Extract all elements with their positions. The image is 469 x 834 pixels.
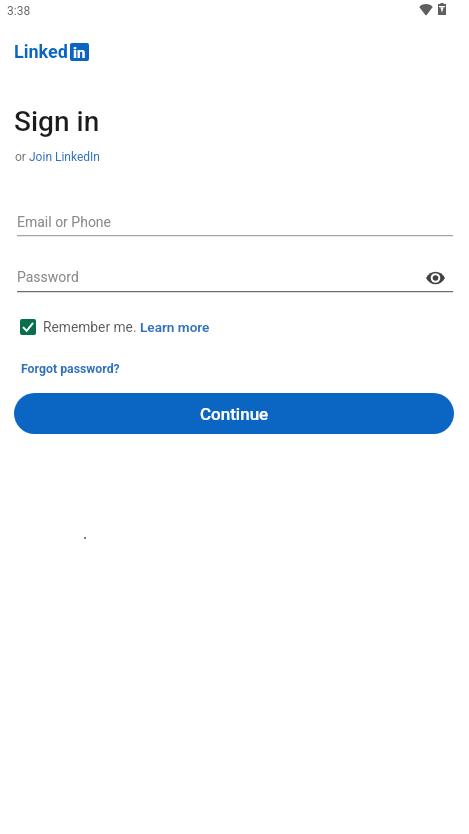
staticText: 3:38 [7,4,31,18]
staticText: Sign in [14,105,100,138]
staticText: Email or Phone [17,214,112,230]
button[interactable]: Continue [14,393,454,434]
staticText: in [73,44,86,61]
staticText: Linked [14,41,68,62]
button[interactable]: Forgot password? [21,362,120,376]
staticText: Forgot password? [21,362,120,376]
staticText: Password [17,269,79,285]
staticText: Continue [200,404,269,424]
staticText: or [15,150,29,164]
button[interactable]: Remember me. [20,319,210,335]
staticText: Remember me. [43,319,140,335]
staticText: Learn more [140,319,210,335]
staticText: Join LinkedIn [29,150,100,164]
button[interactable]: Join LinkedIn [29,150,100,164]
button[interactable]: Show password [424,267,446,289]
